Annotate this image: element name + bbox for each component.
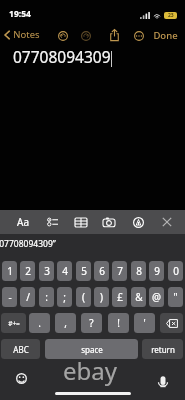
staticText: ? — [89, 316, 94, 330]
staticText: ! — [117, 316, 120, 330]
button[interactable]: 6 — [94, 261, 109, 281]
staticText: “07708094309” — [0, 238, 56, 250]
button[interactable]: Emoji — [16, 373, 28, 385]
button[interactable]: ! — [108, 313, 129, 333]
button[interactable]: Checklist — [40, 210, 64, 234]
staticText: 7 — [117, 264, 123, 278]
button[interactable]: 1 — [2, 261, 17, 281]
button[interactable]: . — [29, 313, 50, 333]
staticText: Aa — [17, 215, 29, 229]
button[interactable]: Markup — [126, 210, 150, 234]
button[interactable]: Notes — [3, 28, 41, 41]
button[interactable]: Redo — [78, 28, 93, 43]
button[interactable]: Camera — [97, 210, 121, 234]
staticText: 4 — [62, 264, 68, 278]
staticText: @ — [152, 290, 161, 304]
staticText: ; — [63, 290, 66, 304]
button[interactable]: ) — [94, 287, 109, 307]
staticText: 2 — [25, 264, 31, 278]
staticText: ' — [143, 316, 146, 330]
staticText: 0 — [173, 264, 179, 278]
staticText: & — [135, 290, 143, 304]
button[interactable]: ? — [81, 313, 102, 333]
button[interactable]: £ — [112, 287, 127, 307]
staticText: 07708094309 — [13, 46, 111, 67]
button[interactable]: #+= — [1, 313, 26, 333]
staticText: 5 — [81, 264, 87, 278]
staticText: 8 — [136, 264, 142, 278]
button[interactable]: Text format — [11, 210, 35, 234]
button[interactable]: return — [142, 339, 183, 359]
button[interactable]: 3 — [39, 261, 54, 281]
staticText: , — [64, 316, 67, 330]
staticText: Notes — [13, 28, 40, 41]
button[interactable]: Backspace — [160, 313, 183, 333]
button[interactable]: Close keyboard — [155, 210, 179, 234]
staticText: : — [45, 290, 48, 304]
staticText: ( — [82, 290, 85, 304]
button[interactable]: ( — [76, 287, 91, 307]
button[interactable]: 7 — [112, 261, 127, 281]
button[interactable]: 5 — [76, 261, 91, 281]
button[interactable]: 2 — [20, 261, 35, 281]
staticText: £ — [117, 290, 123, 304]
button[interactable]: 4 — [57, 261, 72, 281]
staticText: " — [173, 290, 178, 304]
button[interactable]: " — [168, 287, 183, 307]
staticText: return — [151, 344, 175, 355]
button[interactable]: : — [39, 287, 54, 307]
button[interactable]: ABC — [1, 339, 40, 359]
button[interactable]: / — [20, 287, 35, 307]
button[interactable]: ' — [134, 313, 155, 333]
staticText: 6 — [99, 264, 105, 278]
button[interactable]: “07708094309” — [0, 234, 185, 260]
staticText: ABC — [13, 344, 29, 355]
button[interactable]: Dictate — [157, 372, 168, 388]
staticText: ) — [100, 290, 103, 304]
button[interactable]: 9 — [149, 261, 164, 281]
staticText: 23 — [168, 12, 174, 19]
staticText: . — [38, 316, 41, 330]
button[interactable]: 8 — [131, 261, 146, 281]
staticText: space — [81, 344, 103, 355]
button[interactable]: ; — [57, 287, 72, 307]
button[interactable]: space — [45, 339, 138, 359]
staticText: 19:54 — [9, 8, 31, 20]
button[interactable]: @ — [149, 287, 164, 307]
button[interactable]: & — [131, 287, 146, 307]
button[interactable]: 0 — [168, 261, 183, 281]
button[interactable]: Share — [107, 27, 122, 42]
button[interactable]: Table — [69, 210, 93, 234]
staticText: - — [8, 290, 12, 304]
button[interactable]: Done — [152, 29, 179, 42]
staticText: ebay — [63, 354, 117, 387]
staticText: #+= — [8, 319, 20, 328]
staticText: 9 — [154, 264, 160, 278]
staticText: 1 — [7, 264, 13, 278]
staticText: 3 — [44, 264, 50, 278]
button[interactable]: , — [55, 313, 76, 333]
button[interactable]: More — [131, 28, 146, 43]
staticText: / — [26, 290, 30, 304]
button[interactable]: - — [2, 287, 17, 307]
staticText: Done — [153, 29, 178, 42]
button[interactable]: Undo — [55, 28, 70, 43]
